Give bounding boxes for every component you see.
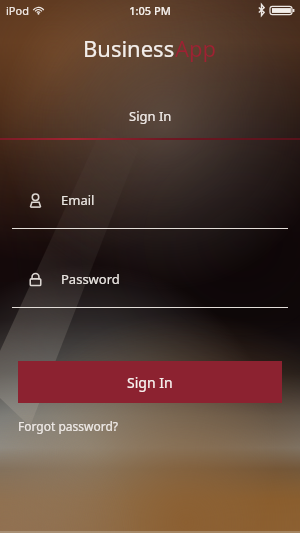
button[interactable]: Forgot password?: [16, 414, 121, 438]
staticText: Sign In: [129, 107, 172, 125]
staticText: Forgot password?: [18, 418, 119, 434]
other: Email: [28, 193, 43, 208]
staticText: 1:05 PM: [129, 3, 171, 18]
button[interactable]: Sign In: [0, 99, 300, 133]
staticText: Password: [61, 270, 120, 288]
staticText: Sign In: [127, 373, 173, 392]
button[interactable]: Sign In: [18, 361, 282, 403]
other: Password: [28, 272, 43, 287]
staticText: Business: [83, 33, 175, 63]
staticText: Email: [61, 191, 95, 209]
staticText: App: [175, 33, 217, 63]
button[interactable]: Password: [0, 266, 300, 308]
button[interactable]: Email: [0, 187, 300, 229]
staticText: iPod: [6, 3, 29, 18]
